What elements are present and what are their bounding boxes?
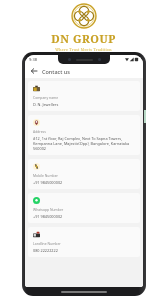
button[interactable]: Company name [28, 81, 140, 111]
staticText: Whatsapp Number [33, 207, 64, 212]
button[interactable]: Back [29, 66, 39, 76]
staticText: 9:38 [29, 57, 37, 62]
staticText: Mobile Number [33, 173, 58, 178]
staticText: +91 9845000002 [33, 214, 63, 219]
button[interactable]: Whatsapp Number [28, 193, 140, 223]
staticText: 080 22222222 [33, 248, 58, 253]
staticText: DN GROUP [51, 31, 116, 46]
button[interactable]: Address [28, 115, 140, 155]
staticText: #12, 1st floor, Raj Complex, Next To Sap… [33, 136, 130, 151]
staticText: Company name [33, 95, 59, 100]
staticText: Contact us [42, 68, 70, 75]
staticText: Address [33, 129, 46, 134]
staticText: +91 9845000002 [33, 180, 63, 185]
staticText: Where Trust Meets Tradition [55, 47, 112, 52]
button[interactable]: Landline Number [28, 227, 140, 257]
staticText: D. N. Jewellers [33, 102, 59, 107]
staticText: Landline Number [33, 241, 61, 246]
button[interactable]: Mobile Number [28, 159, 140, 189]
